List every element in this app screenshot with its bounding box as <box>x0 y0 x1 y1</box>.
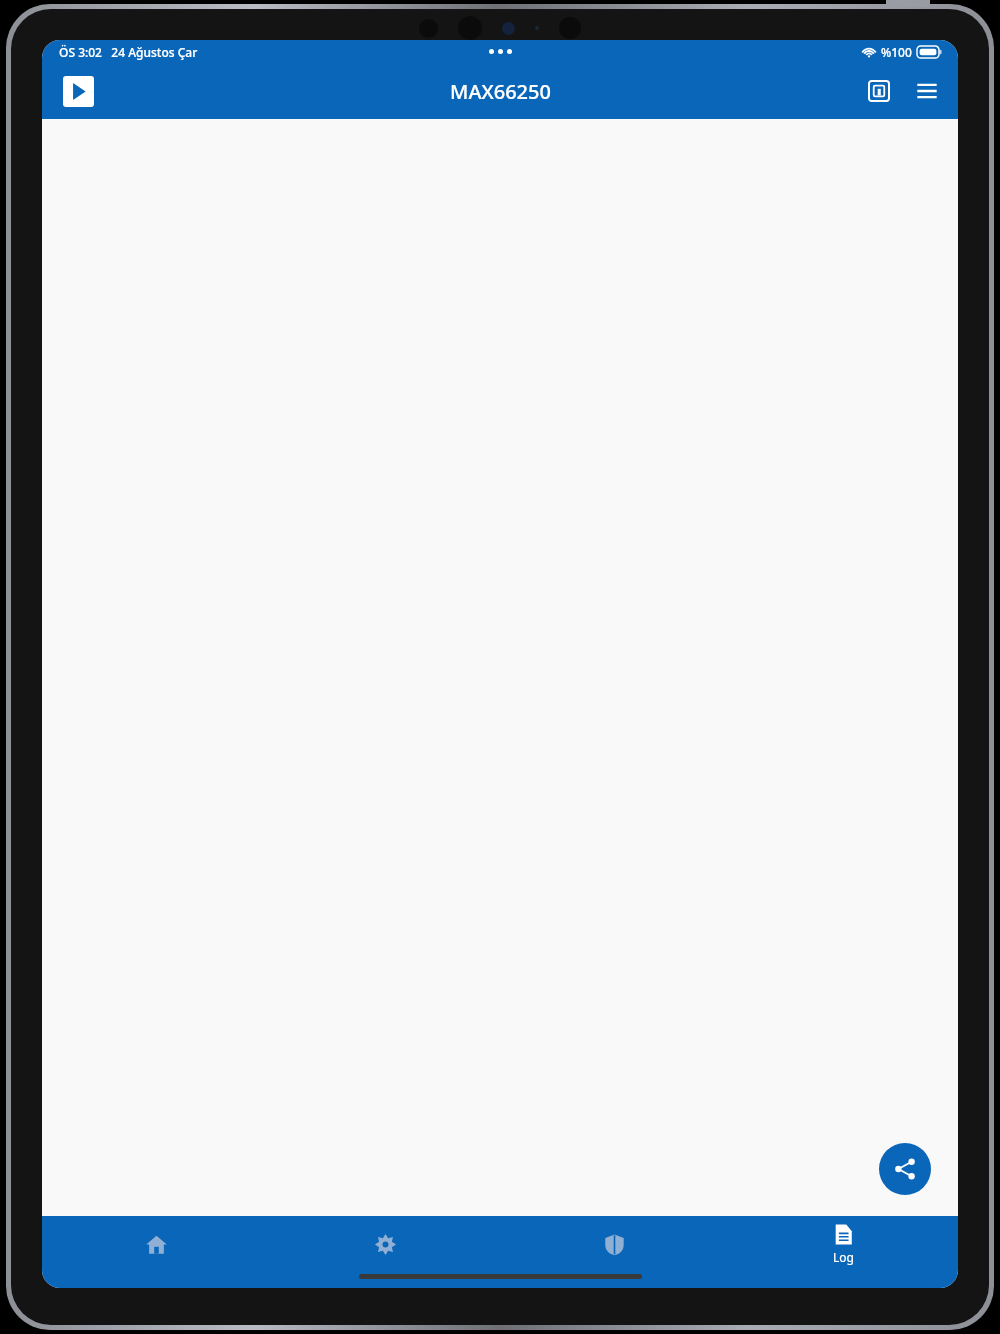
staticText: Log <box>833 1249 854 1265</box>
staticText: %100 <box>881 44 912 60</box>
button[interactable]: Log <box>729 1216 958 1272</box>
staticText: MAX66250 <box>450 78 551 105</box>
button[interactable]: Play <box>60 73 96 109</box>
button[interactable]: Settings <box>271 1216 500 1272</box>
button[interactable]: NFC <box>862 74 896 108</box>
staticText: ÖS 3:02 24 Ağustos Çar <box>59 44 198 60</box>
button[interactable]: Home <box>42 1216 271 1272</box>
button[interactable]: Share <box>879 1143 931 1195</box>
button[interactable]: Menu <box>910 74 944 108</box>
button[interactable]: Security <box>500 1216 729 1272</box>
